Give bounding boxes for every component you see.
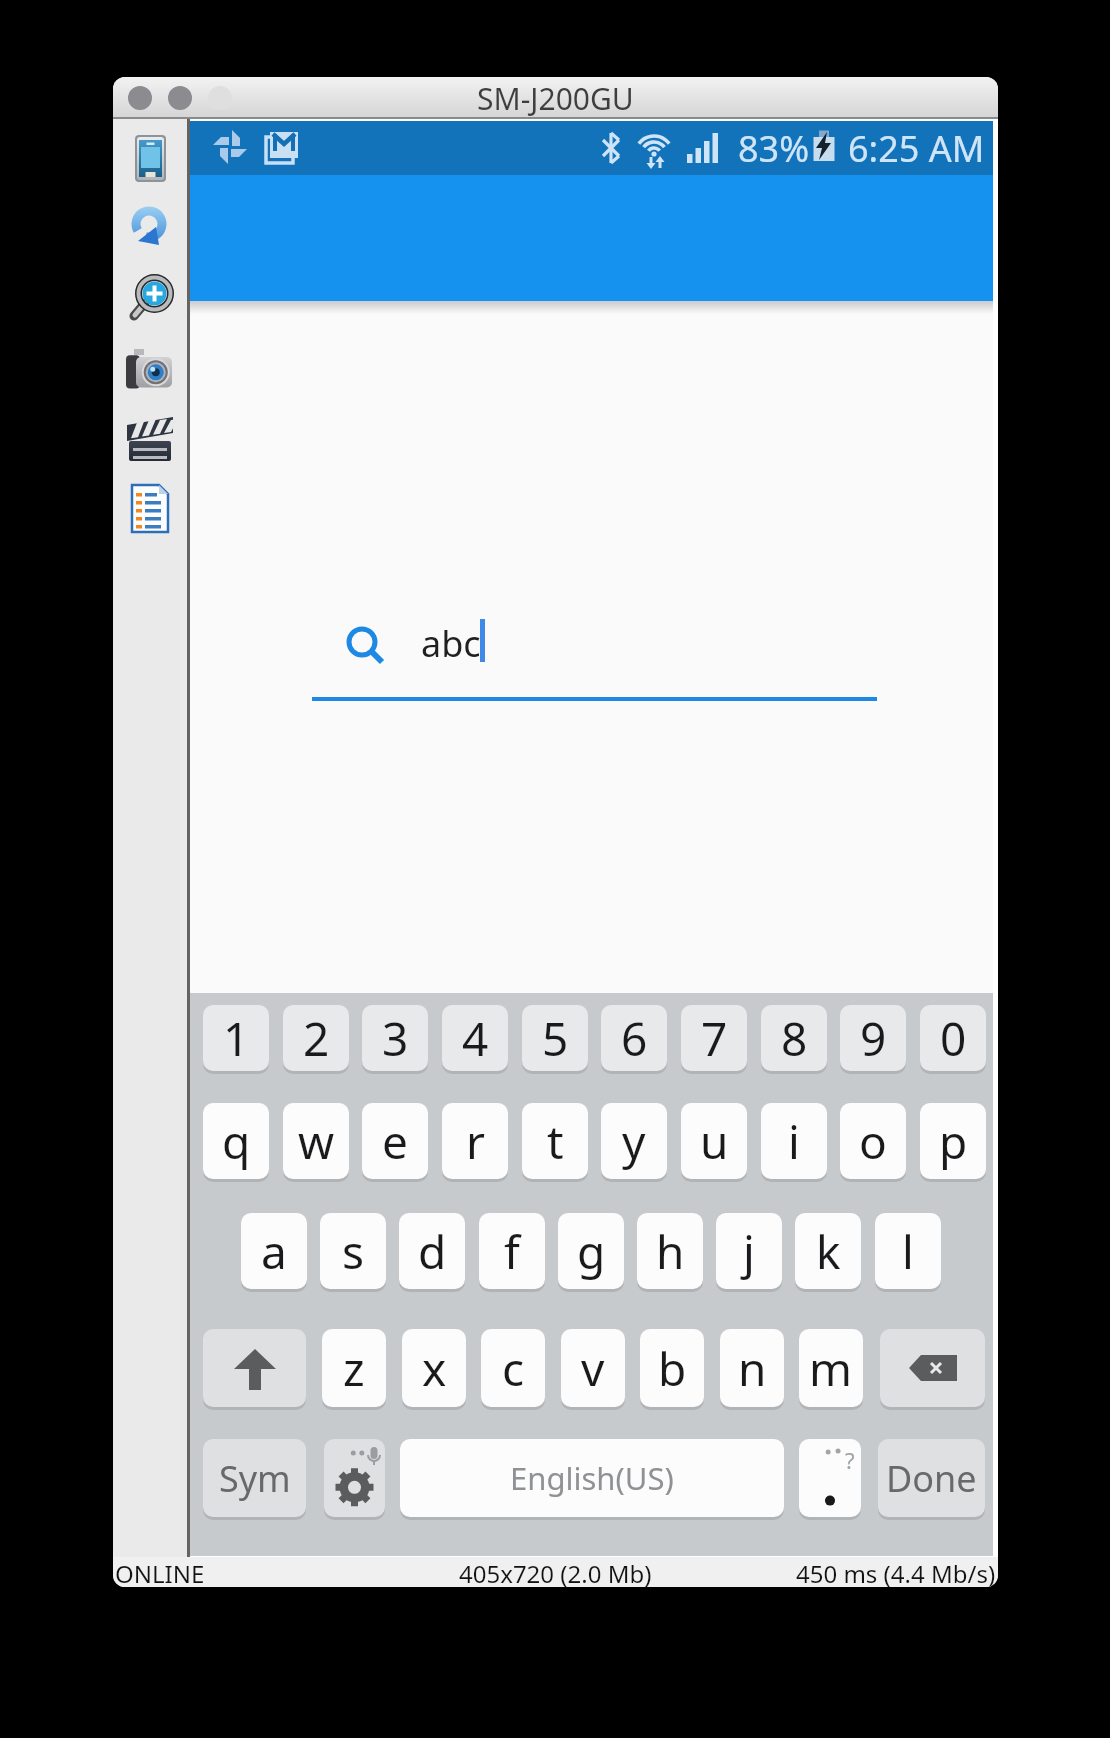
button[interactable]: o	[840, 1103, 906, 1179]
staticText: r	[466, 1110, 485, 1173]
button[interactable]: p	[920, 1103, 986, 1179]
button[interactable]: l	[875, 1213, 941, 1289]
staticText: 5	[542, 1007, 569, 1070]
button[interactable]: 4	[442, 1005, 508, 1071]
button[interactable]: e	[362, 1103, 428, 1179]
staticText: 4	[462, 1007, 489, 1070]
staticText: y	[622, 1110, 646, 1173]
button[interactable]: u	[681, 1103, 747, 1179]
staticText: 6	[621, 1007, 648, 1070]
button[interactable]: Sym	[203, 1439, 306, 1517]
button[interactable]: 5	[522, 1005, 588, 1071]
staticText: d	[418, 1220, 447, 1283]
button[interactable]: x	[402, 1329, 466, 1407]
button[interactable]: g	[558, 1213, 624, 1289]
staticText: e	[382, 1110, 408, 1173]
button[interactable]: w	[283, 1103, 349, 1179]
button[interactable]: m	[799, 1329, 863, 1407]
staticText: English(US)	[510, 1457, 674, 1499]
staticText: o	[859, 1110, 887, 1173]
staticText: 0	[940, 1007, 967, 1070]
staticText: s	[342, 1220, 365, 1283]
button[interactable]: a	[241, 1213, 307, 1289]
button[interactable]	[203, 1329, 306, 1407]
button[interactable]: 6	[601, 1005, 667, 1071]
staticText: z	[343, 1337, 365, 1400]
staticText: x	[422, 1337, 447, 1400]
button[interactable]	[324, 1439, 385, 1517]
staticText: v	[581, 1337, 605, 1400]
button[interactable]: 3	[362, 1005, 428, 1071]
button[interactable]: v	[561, 1329, 625, 1407]
staticText: Sym	[219, 1454, 291, 1503]
staticText: 83%	[738, 124, 810, 173]
staticText: p	[939, 1110, 968, 1173]
staticText: k	[816, 1220, 841, 1283]
button[interactable]: y	[601, 1103, 667, 1179]
button[interactable]	[135, 135, 166, 182]
staticText: q	[222, 1110, 251, 1173]
staticText: 1	[223, 1007, 250, 1070]
staticText: b	[658, 1337, 687, 1400]
staticText: 3	[382, 1007, 409, 1070]
button[interactable]: 0	[920, 1005, 986, 1071]
button[interactable]: d	[399, 1213, 465, 1289]
staticText: c	[502, 1337, 525, 1400]
button[interactable]: b	[640, 1329, 704, 1407]
staticText: 8	[781, 1007, 808, 1070]
button[interactable]	[342, 622, 402, 682]
button[interactable]: 9	[840, 1005, 906, 1071]
staticText: 6:25 AM	[848, 124, 985, 173]
button[interactable]: 2	[283, 1005, 349, 1071]
staticText: a	[261, 1220, 287, 1283]
button[interactable]: k	[795, 1213, 861, 1289]
staticText: l	[902, 1220, 914, 1283]
button[interactable]: 7	[681, 1005, 747, 1071]
staticText: g	[577, 1220, 606, 1283]
staticText: j	[743, 1220, 755, 1283]
button[interactable]: r	[442, 1103, 508, 1179]
button[interactable]: s	[320, 1213, 386, 1289]
button[interactable]: j	[716, 1213, 782, 1289]
button[interactable]: q	[203, 1103, 269, 1179]
button[interactable]: Done	[878, 1439, 985, 1517]
staticText: abc	[421, 619, 481, 668]
staticText: m	[809, 1337, 853, 1400]
staticText: u	[700, 1110, 729, 1173]
button[interactable]: z	[322, 1329, 386, 1407]
button[interactable]	[126, 275, 173, 322]
staticText: 405x720 (2.0 Mb)	[459, 1557, 652, 1587]
button[interactable]	[128, 86, 152, 110]
button[interactable]: c	[481, 1329, 545, 1407]
button[interactable]	[131, 484, 169, 533]
button[interactable]: f	[479, 1213, 545, 1289]
button[interactable]	[880, 1329, 985, 1407]
staticText: ONLINE	[115, 1557, 205, 1587]
staticText: i	[788, 1110, 800, 1173]
button[interactable]: t	[522, 1103, 588, 1179]
staticText: h	[656, 1220, 685, 1283]
button[interactable]: ?	[799, 1439, 861, 1517]
button[interactable]	[130, 205, 170, 251]
button[interactable]: i	[761, 1103, 827, 1179]
staticText: 9	[860, 1007, 887, 1070]
staticText: ?	[845, 1445, 855, 1475]
button[interactable]	[208, 86, 232, 110]
button[interactable]: h	[637, 1213, 703, 1289]
button[interactable]: English(US)	[400, 1439, 784, 1517]
staticText: 450 ms (4.4 Mb/s)	[796, 1557, 996, 1587]
staticText: 2	[303, 1007, 330, 1070]
staticText: SM-J200GU	[477, 78, 634, 119]
staticText: Done	[886, 1454, 977, 1503]
button[interactable]: 8	[761, 1005, 827, 1071]
staticText: n	[738, 1337, 767, 1400]
staticText: f	[504, 1220, 520, 1283]
staticText: t	[547, 1110, 564, 1173]
button[interactable]: n	[720, 1329, 784, 1407]
button[interactable]	[127, 417, 173, 463]
button[interactable]	[126, 347, 174, 393]
staticText: w	[298, 1110, 335, 1173]
button[interactable]	[168, 86, 192, 110]
button[interactable]: 1	[203, 1005, 269, 1071]
